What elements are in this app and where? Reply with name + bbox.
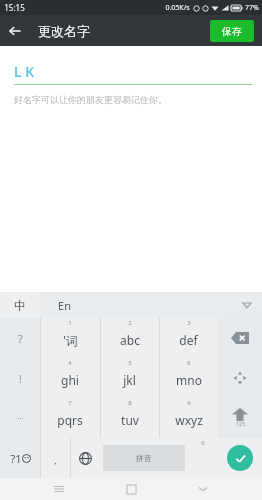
staticText: 123 [236,421,245,428]
button[interactable]: 5 [100,358,159,398]
button[interactable]: 0 [188,438,218,478]
button[interactable]: ! [0,358,40,398]
button[interactable]: Shift [218,398,262,438]
staticText: ··· [17,413,24,424]
button[interactable]: ? [0,318,40,358]
button[interactable]: Menu [46,478,72,500]
button[interactable]: Globe, change language [70,438,100,478]
staticText: 15:15 [4,2,25,13]
button[interactable]: Move cursor [218,358,262,398]
staticText: 9 [187,399,191,407]
staticText: tuv [121,412,139,428]
button[interactable]: 9 [159,398,218,438]
staticText: 好名字可以让你的朋友更容易记住你。 [14,94,167,105]
button[interactable]: 1 [40,318,100,358]
button[interactable]: ， [40,438,70,478]
staticText: ?1 [10,451,22,466]
button[interactable]: Delete [218,318,262,358]
staticText: 保存 [222,25,242,38]
staticText: 3 [187,319,191,327]
button[interactable]: 8 [100,398,159,438]
staticText: 拼音 [136,453,152,463]
staticText: ! [19,371,22,386]
staticText: 5 [128,359,132,367]
button[interactable]: Symbols and emoji [0,438,40,478]
button[interactable]: Back [190,478,216,500]
staticText: 4 [68,359,72,367]
button[interactable]: 4 [40,358,100,398]
button[interactable]: 3 [159,318,218,358]
staticText: ， [50,454,60,467]
staticText: def [179,332,198,348]
staticText: 8 [128,399,132,407]
staticText: L K [14,62,34,81]
button[interactable]: 2 [100,318,159,358]
button[interactable]: 6 [159,358,218,398]
button[interactable]: Back [0,16,30,46]
button[interactable]: En [40,292,232,318]
staticText: 0 [201,439,205,447]
button[interactable]: Switch input language [0,292,40,318]
staticText: 2 [128,319,132,327]
staticText: En [58,298,71,313]
staticText: 6 [187,359,191,367]
staticText: 更改名字 [38,23,90,39]
button[interactable]: 拼音 [103,445,185,471]
button[interactable]: Confirm [227,445,253,471]
staticText: ghi [61,372,79,388]
staticText: 0.05K/s [165,3,190,13]
staticText: jkl [123,372,136,388]
button[interactable]: L K [14,62,252,85]
staticText: ? [18,331,23,346]
staticText: mno [176,372,202,388]
button[interactable]: Home [118,478,144,500]
staticText: pqrs [57,412,83,428]
staticText: 77% [245,3,259,13]
staticText: '词 [63,332,78,348]
staticText: 中 [14,298,26,313]
button[interactable]: 7 [40,398,100,438]
button[interactable]: Collapse keyboard [232,292,262,318]
staticText: 7 [68,399,72,407]
staticText: abc [120,332,140,348]
staticText: wxyz [175,412,203,428]
button[interactable]: 保存 [210,20,254,42]
staticText: 1 [68,319,72,327]
